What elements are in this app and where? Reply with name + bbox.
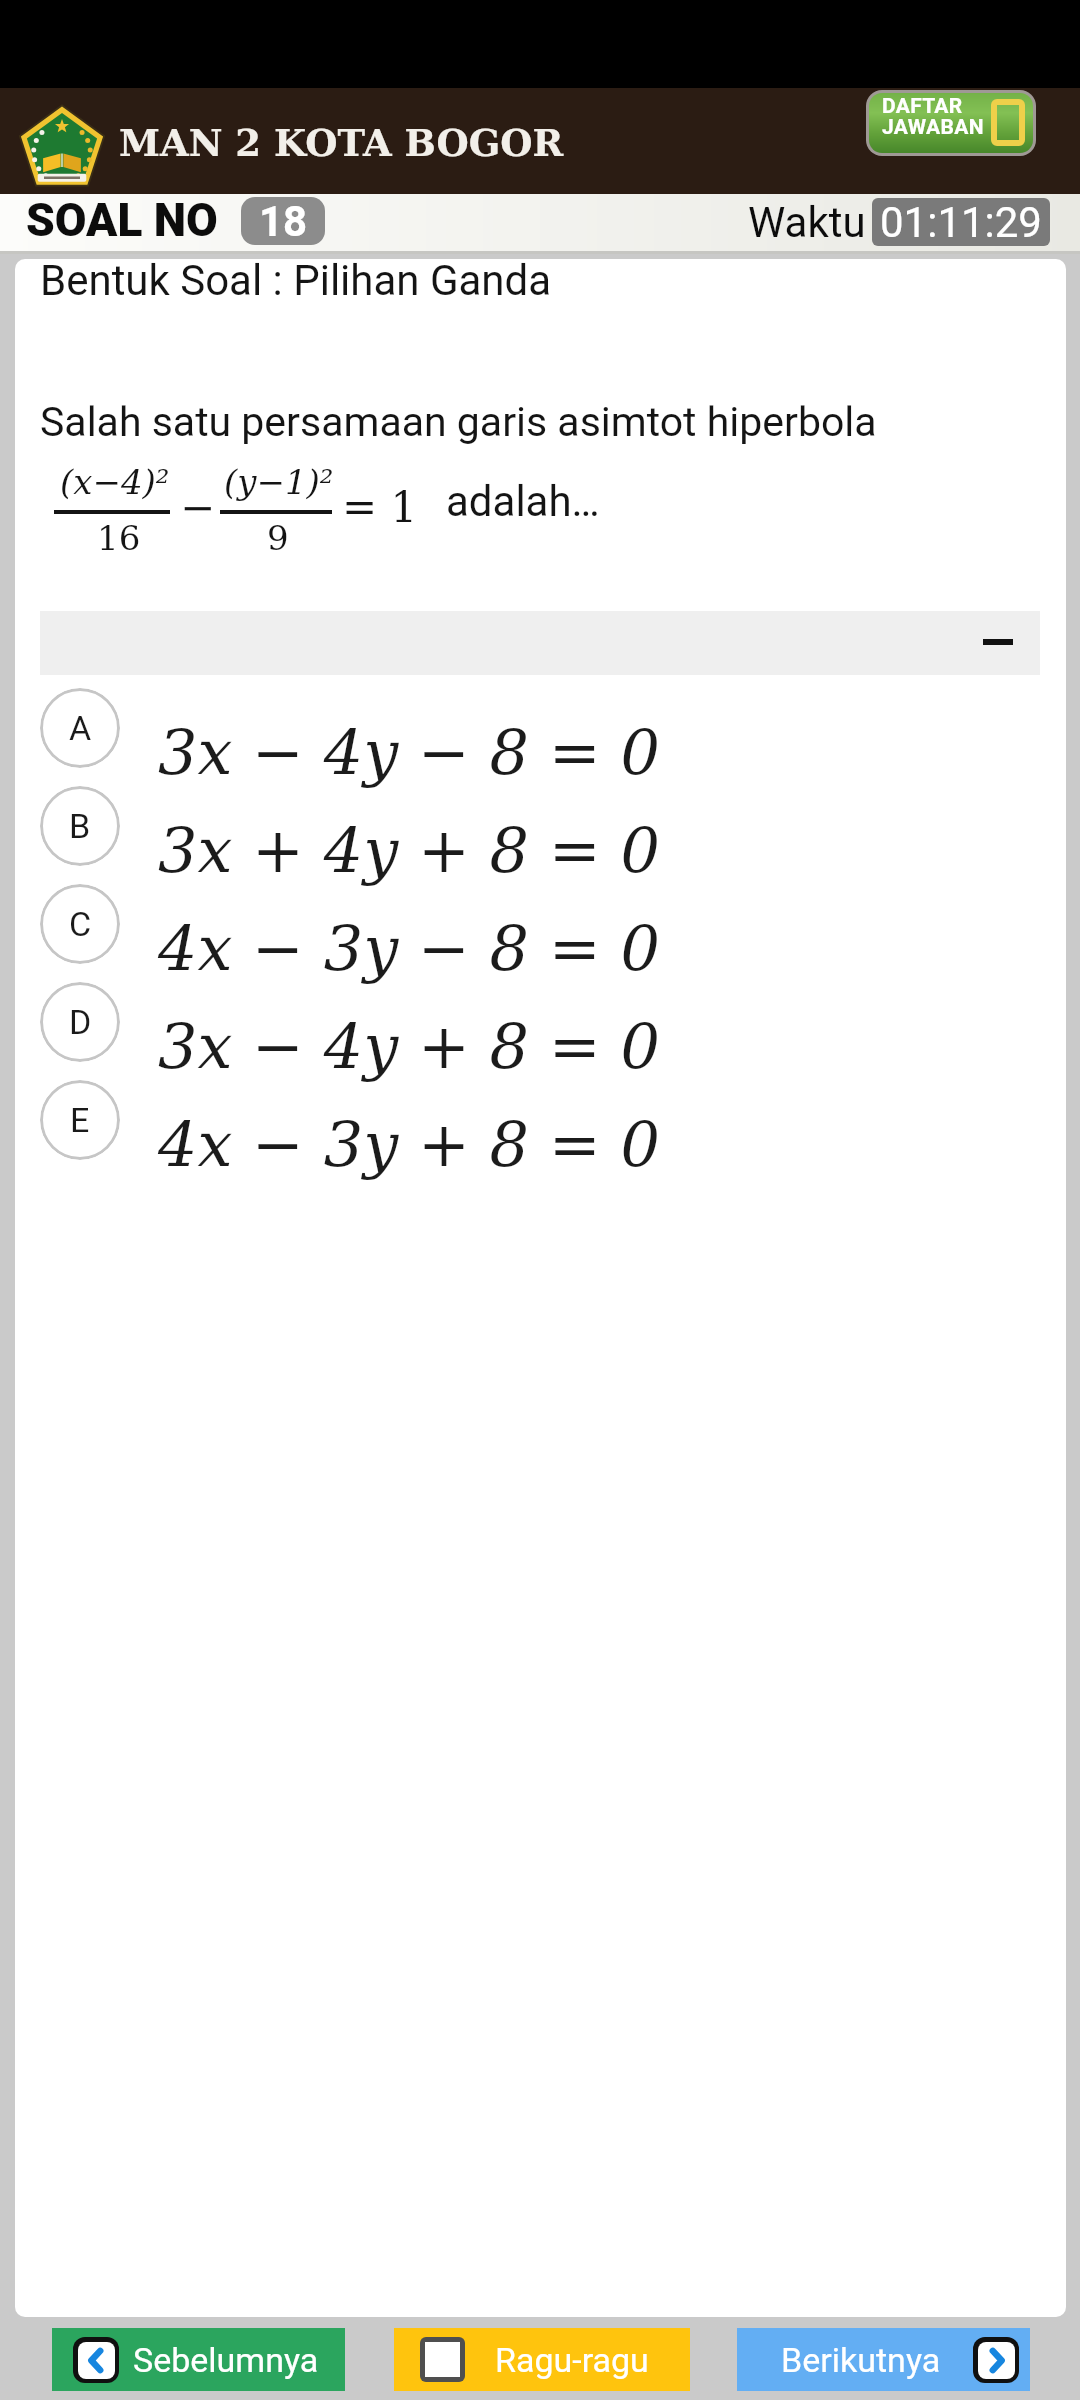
staticText: 18 (259, 197, 308, 245)
staticText: (y−1)² (224, 462, 334, 502)
staticText: E (70, 1100, 90, 1140)
staticText: Sebelumnya (133, 2340, 319, 2380)
staticText: DAFTAR (882, 94, 963, 119)
staticText: 3x − 4y + 8 = 0 (158, 1010, 660, 1082)
staticText: 3x + 4y + 8 = 0 (158, 814, 660, 886)
staticText: SOAL NO (26, 193, 218, 247)
staticText: D (69, 1002, 92, 1042)
staticText: 01:11:29 (880, 198, 1042, 246)
staticText: 16 (97, 518, 141, 558)
staticText: 4x − 3y + 8 = 0 (158, 1108, 660, 1180)
staticText: Waktu (748, 198, 866, 247)
staticText: = 1 (342, 483, 418, 532)
staticText: C (69, 904, 92, 944)
staticText: 4x − 3y − 8 = 0 (158, 912, 660, 984)
staticText: MAN 2 KOTA BOGOR (119, 121, 564, 164)
staticText: − (180, 483, 216, 532)
staticText: Ragu-ragu (495, 2340, 649, 2380)
staticText: Berikutnya (781, 2340, 941, 2380)
staticText: adalah… (446, 477, 600, 526)
staticText: (x−4)² (60, 462, 170, 502)
staticText: 9 (267, 518, 289, 558)
staticText: A (69, 708, 92, 748)
staticText: Salah satu persamaan garis asimtot hiper… (40, 398, 877, 446)
staticText: Bentuk Soal : Pilihan Ganda (40, 256, 552, 305)
staticText: JAWABAN (882, 115, 984, 140)
staticText: B (69, 806, 91, 846)
staticText: 3x − 4y − 8 = 0 (158, 716, 660, 788)
